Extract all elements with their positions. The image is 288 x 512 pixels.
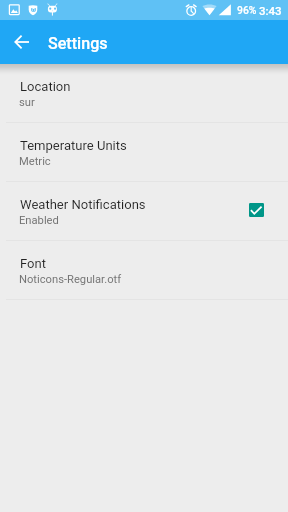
staticText: Location	[20, 79, 71, 94]
staticText: Weather Notifications	[20, 197, 146, 212]
staticText: 96%	[237, 4, 257, 16]
staticText: Noticons-Regular.otf	[19, 273, 122, 286]
staticText: Enabled	[19, 214, 59, 227]
button[interactable]: Weather Notifications	[0, 182, 288, 241]
staticText: Font	[20, 256, 46, 271]
staticText: Temperature Units	[20, 138, 127, 153]
button[interactable]: Back	[3, 23, 41, 61]
button[interactable]: Temperature Units	[0, 123, 288, 182]
button[interactable]: Location	[0, 64, 288, 123]
staticText: Settings	[48, 34, 108, 53]
staticText: Metric	[19, 155, 51, 168]
button[interactable]: Font	[0, 241, 288, 300]
staticText: 3:43	[259, 4, 282, 17]
staticText: sur	[19, 96, 35, 109]
